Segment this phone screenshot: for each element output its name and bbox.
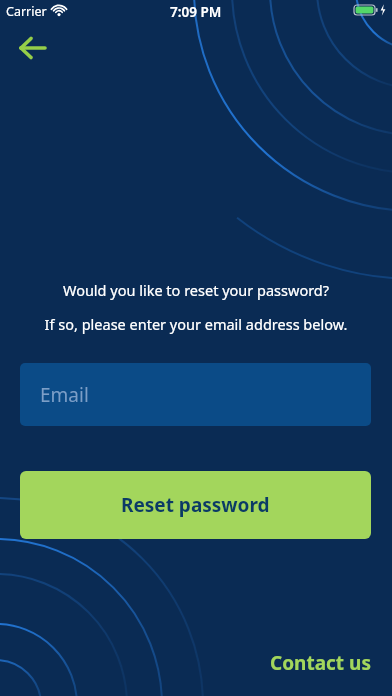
button[interactable] <box>12 33 56 63</box>
staticText: 7:09 PM <box>170 3 222 21</box>
button[interactable]: Email <box>20 363 371 426</box>
staticText: Carrier <box>6 3 47 18</box>
button[interactable]: Reset password <box>20 471 371 539</box>
button[interactable]: Contact us <box>270 650 371 676</box>
staticText: Contact us <box>270 650 371 676</box>
staticText: If so, please enter your email address b… <box>0 314 392 334</box>
staticText: Would you like to reset your password? <box>0 280 392 300</box>
staticText: Reset password <box>121 492 270 518</box>
staticText: Email <box>40 382 89 408</box>
